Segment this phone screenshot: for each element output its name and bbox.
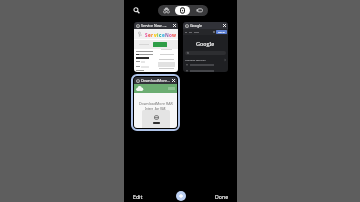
staticText: i [157, 32, 159, 38]
button[interactable]: Close tab [172, 23, 177, 28]
button[interactable]: Close tab [222, 23, 227, 28]
staticText: Service Now -... [141, 23, 171, 28]
staticText: DownloadMore... [141, 78, 170, 83]
staticText: Intern, Apr, RAR [145, 107, 166, 111]
button[interactable]: Tab groups [192, 6, 207, 15]
button[interactable]: Tabs [175, 6, 190, 15]
staticText: Google [196, 40, 215, 48]
button[interactable]: Service Now -... [134, 22, 178, 72]
button[interactable]: New tab [176, 191, 186, 201]
staticText: Google [190, 23, 221, 28]
staticText: r [151, 32, 154, 38]
button[interactable]: Edit [133, 193, 143, 200]
button[interactable]: Search [129, 3, 144, 18]
button[interactable]: Google [183, 22, 228, 72]
staticText: Sign in [218, 31, 225, 34]
staticText: w [172, 32, 176, 38]
staticText: S [145, 32, 148, 38]
staticText: Trending searches [185, 58, 206, 61]
button[interactable]: DownloadMore... [131, 74, 180, 131]
staticText: N [165, 32, 169, 38]
staticText: Done [215, 193, 229, 200]
staticText: e [162, 32, 165, 38]
staticText: Edit [133, 193, 143, 200]
staticText: e [148, 32, 151, 38]
staticText: c [159, 32, 162, 38]
button[interactable]: Close tab [171, 78, 176, 83]
staticText: o [169, 32, 172, 38]
button[interactable]: Private browsing [159, 6, 173, 15]
staticText: DownloadMore RAR [139, 101, 173, 106]
button[interactable]: Done [215, 193, 229, 200]
staticText: v [154, 32, 157, 38]
